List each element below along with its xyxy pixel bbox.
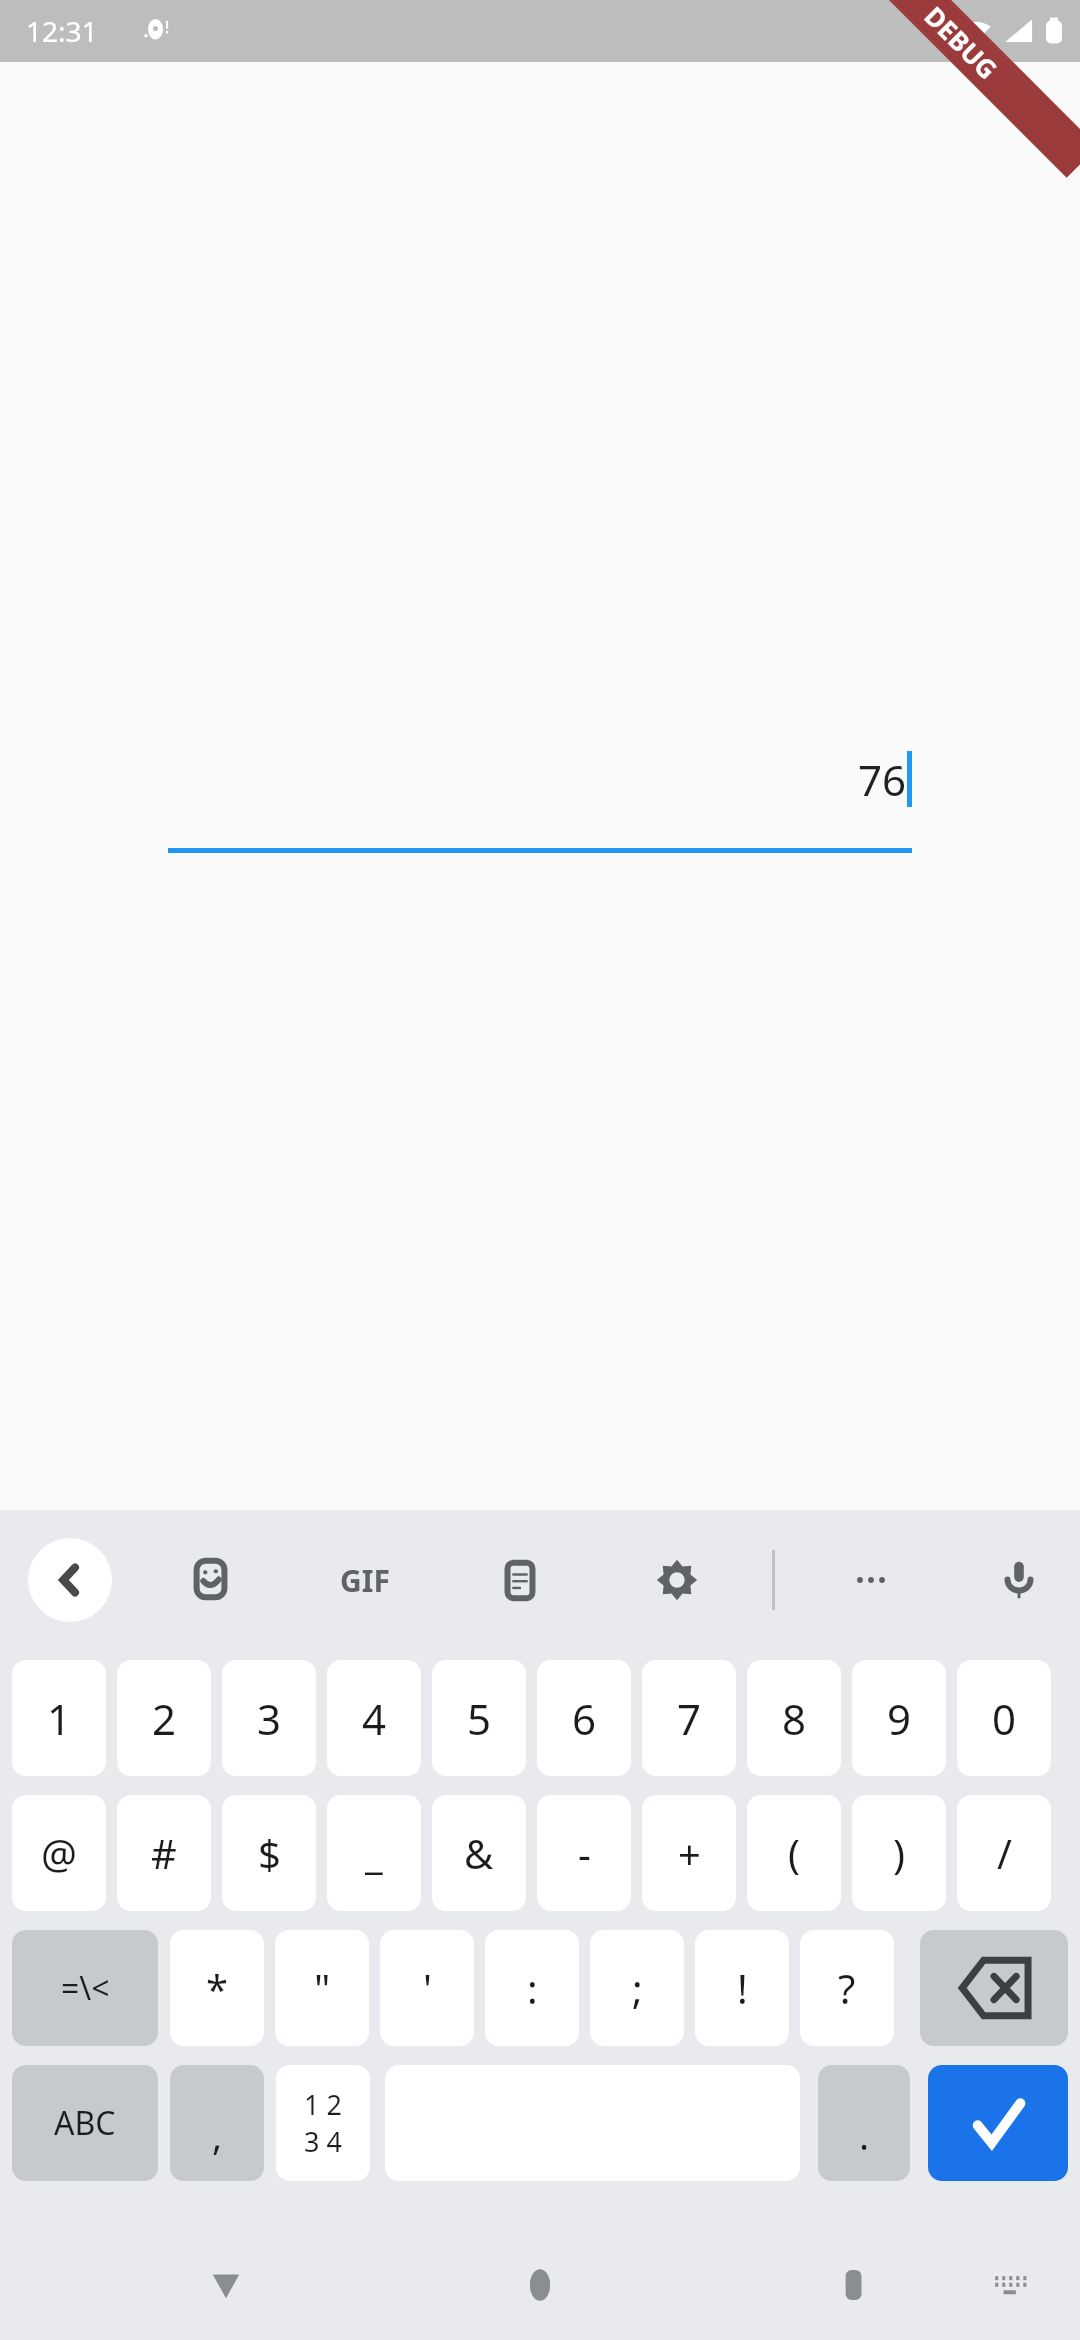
button[interactable]: * — [170, 1930, 264, 2046]
button[interactable]: - — [537, 1795, 631, 1911]
staticText: 76 — [858, 751, 907, 808]
button[interactable]: " — [275, 1930, 369, 2046]
staticText: GIF — [340, 1560, 390, 1601]
button[interactable]: Clipboard — [477, 1537, 563, 1623]
staticText: 1 — [47, 1690, 72, 1747]
staticText: * — [206, 1961, 229, 2015]
button[interactable]: Back — [190, 2249, 262, 2321]
button[interactable]: & — [432, 1795, 526, 1911]
staticText: ABC — [54, 2101, 116, 2145]
button[interactable]: @ — [12, 1795, 106, 1911]
staticText: 0 — [992, 1690, 1017, 1747]
staticText: @ — [41, 1826, 77, 1880]
staticText: ! — [737, 1961, 748, 2015]
button[interactable]: Done — [928, 2065, 1068, 2181]
button[interactable]: 4 — [327, 1660, 421, 1776]
button[interactable]: GIF — [322, 1537, 408, 1623]
button[interactable]: More options — [828, 1537, 914, 1623]
button[interactable]: Home — [504, 2249, 576, 2321]
staticText: + — [678, 1826, 701, 1880]
staticText: 2 — [152, 1690, 177, 1747]
button[interactable]: 0 — [957, 1660, 1051, 1776]
staticText: 12:31 — [26, 12, 98, 50]
staticText: DEBUG — [917, 0, 1006, 87]
button[interactable]: 76 — [168, 742, 912, 853]
button[interactable]: . — [818, 2065, 910, 2181]
button[interactable]: # — [117, 1795, 211, 1911]
button[interactable]: $ — [222, 1795, 316, 1911]
staticText: 5 — [467, 1690, 492, 1747]
button[interactable]: _ — [327, 1795, 421, 1911]
button[interactable]: ( — [747, 1795, 841, 1911]
staticText: $ — [258, 1826, 281, 1880]
staticText: # — [151, 1826, 177, 1880]
button[interactable]: : — [485, 1930, 579, 2046]
staticText: ( — [788, 1826, 800, 1880]
button[interactable]: 2 — [117, 1660, 211, 1776]
staticText: ' — [423, 1961, 432, 2015]
button[interactable]: =\< — [12, 1930, 158, 2046]
staticText: 8 — [782, 1690, 807, 1747]
staticText: . — [859, 2109, 870, 2161]
button[interactable]: Back — [28, 1538, 112, 1622]
button[interactable]: ? — [800, 1930, 894, 2046]
button[interactable]: Settings — [634, 1537, 720, 1623]
button[interactable]: Backspace — [920, 1930, 1068, 2046]
staticText: 3 4 — [304, 2123, 342, 2160]
staticText: ) — [893, 1826, 905, 1880]
button[interactable]: ! — [695, 1930, 789, 2046]
button[interactable]: Switch keyboard — [975, 2249, 1047, 2321]
staticText: 3 — [257, 1690, 282, 1747]
button[interactable]: 1 — [12, 1660, 106, 1776]
button[interactable]: , — [170, 2065, 264, 2181]
staticText: 9 — [887, 1690, 912, 1747]
staticText: =\< — [61, 1966, 110, 2010]
staticText: _ — [365, 1826, 383, 1880]
staticText: 1 2 — [304, 2086, 342, 2123]
staticText: - — [578, 1826, 591, 1880]
button[interactable]: Voice input — [976, 1537, 1062, 1623]
staticText: 7 — [677, 1690, 702, 1747]
button[interactable]: 3 — [222, 1660, 316, 1776]
button[interactable]: + — [642, 1795, 736, 1911]
staticText: 4 — [362, 1690, 387, 1747]
button[interactable]: 5 — [432, 1660, 526, 1776]
button[interactable]: 7 — [642, 1660, 736, 1776]
staticText: ; — [632, 1961, 643, 2015]
staticText: / — [997, 1826, 1012, 1880]
staticText: & — [464, 1826, 494, 1880]
button[interactable]: 6 — [537, 1660, 631, 1776]
staticText: " — [314, 1961, 331, 2015]
staticText: : — [527, 1961, 538, 2015]
button[interactable]: / — [957, 1795, 1051, 1911]
button[interactable]: ' — [380, 1930, 474, 2046]
button[interactable]: ; — [590, 1930, 684, 2046]
staticText: , — [212, 2109, 223, 2161]
button[interactable]: Stickers — [168, 1537, 254, 1623]
button[interactable]: Numbers — [276, 2065, 370, 2181]
button[interactable]: 8 — [747, 1660, 841, 1776]
button[interactable]: 9 — [852, 1660, 946, 1776]
button[interactable]: Recent apps — [818, 2249, 890, 2321]
staticText: 6 — [572, 1690, 597, 1747]
button[interactable]: ABC — [12, 2065, 158, 2181]
button[interactable]: ) — [852, 1795, 946, 1911]
staticText: ? — [838, 1961, 856, 2015]
